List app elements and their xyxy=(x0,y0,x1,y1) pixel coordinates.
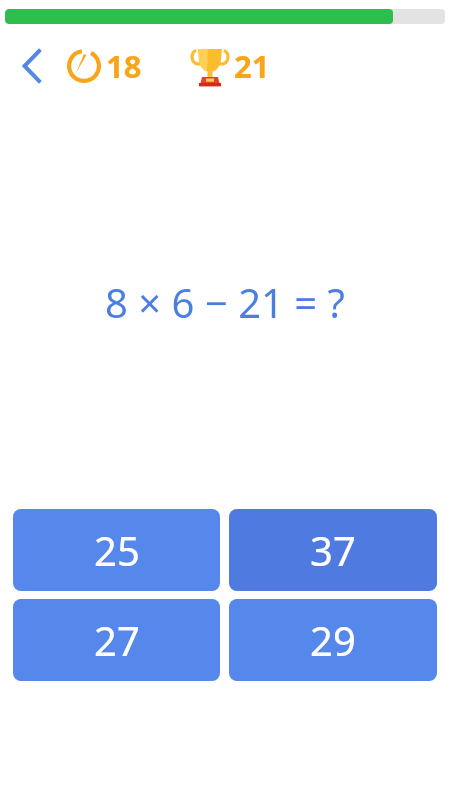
staticText: 18 xyxy=(106,45,142,87)
button[interactable]: 29 xyxy=(229,599,437,681)
staticText: 8 × 6 − 21 = ? xyxy=(105,275,345,329)
staticText: 37 xyxy=(310,523,356,577)
staticText: 27 xyxy=(94,613,140,667)
staticText: 25 xyxy=(94,523,140,577)
button[interactable]: 27 xyxy=(13,599,220,681)
button[interactable]: 37 xyxy=(229,509,437,591)
button[interactable]: 25 xyxy=(13,509,220,591)
staticText: 21 xyxy=(234,45,270,87)
staticText: 29 xyxy=(310,613,356,667)
button[interactable]: Back xyxy=(12,46,52,86)
